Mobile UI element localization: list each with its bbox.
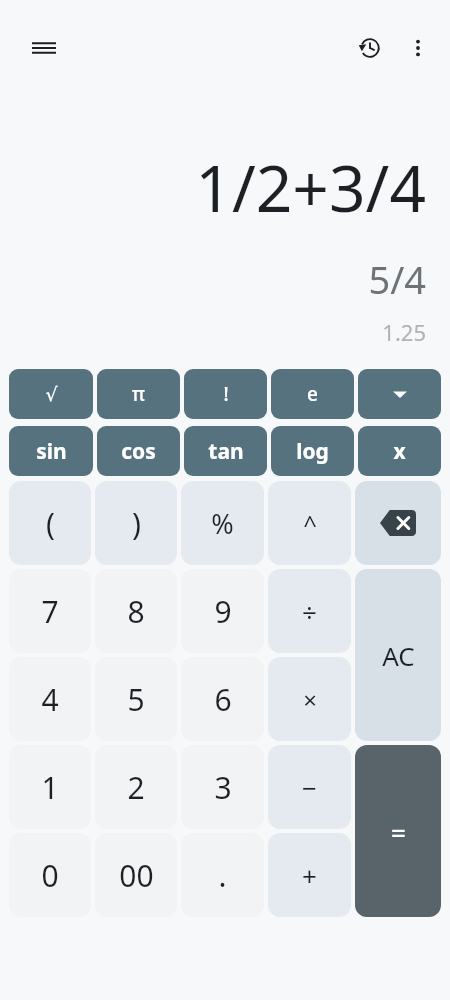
- button[interactable]: −: [268, 745, 351, 829]
- button[interactable]: ×: [268, 657, 351, 741]
- staticText: .: [218, 855, 227, 896]
- staticText: ×: [303, 683, 317, 716]
- button[interactable]: History: [346, 24, 394, 72]
- staticText: AC: [382, 638, 415, 673]
- button[interactable]: Menu: [20, 24, 68, 72]
- button[interactable]: More functions: [358, 369, 441, 419]
- staticText: log: [296, 437, 329, 466]
- button[interactable]: !: [184, 369, 267, 419]
- staticText: 3: [214, 767, 232, 808]
- button[interactable]: e: [271, 369, 354, 419]
- staticText: sin: [36, 437, 67, 466]
- button[interactable]: 4: [9, 657, 91, 741]
- button[interactable]: π: [97, 369, 180, 419]
- button[interactable]: x: [358, 426, 441, 476]
- staticText: x: [393, 437, 406, 466]
- button[interactable]: +: [268, 833, 351, 917]
- staticText: =: [391, 814, 406, 849]
- staticText: e: [307, 381, 318, 407]
- button[interactable]: ÷: [268, 569, 351, 653]
- staticText: 0: [41, 855, 59, 896]
- staticText: !: [223, 381, 229, 407]
- button[interactable]: Backspace: [355, 481, 441, 565]
- staticText: tan: [208, 437, 244, 466]
- button[interactable]: 2: [95, 745, 177, 829]
- button[interactable]: 0: [9, 833, 91, 917]
- staticText: 7: [41, 591, 59, 632]
- staticText: 9: [214, 591, 232, 632]
- staticText: %: [211, 505, 234, 542]
- button[interactable]: ^: [268, 481, 351, 565]
- button[interactable]: log: [271, 426, 354, 476]
- button[interactable]: 8: [95, 569, 177, 653]
- button[interactable]: 9: [181, 569, 264, 653]
- staticText: 00: [119, 855, 154, 896]
- staticText: −: [302, 770, 317, 805]
- button[interactable]: 00: [95, 833, 177, 917]
- staticText: 6: [214, 679, 232, 720]
- button[interactable]: %: [181, 481, 264, 565]
- button[interactable]: tan: [184, 426, 267, 476]
- staticText: 8: [127, 591, 145, 632]
- staticText: ): [132, 503, 141, 544]
- button[interactable]: cos: [97, 426, 180, 476]
- staticText: 2: [127, 767, 145, 808]
- staticText: 1.25: [382, 317, 426, 347]
- staticText: 4: [41, 679, 59, 720]
- staticText: π: [132, 381, 145, 407]
- staticText: √: [45, 383, 58, 405]
- button[interactable]: 3: [181, 745, 264, 829]
- staticText: 1/2+3/4: [195, 144, 426, 231]
- staticText: ^: [303, 507, 317, 540]
- button[interactable]: AC: [355, 569, 441, 741]
- button[interactable]: sin: [9, 426, 93, 476]
- button[interactable]: .: [181, 833, 264, 917]
- staticText: 5/4: [368, 253, 426, 305]
- staticText: 1: [41, 767, 59, 808]
- button[interactable]: 7: [9, 569, 91, 653]
- button[interactable]: 5: [95, 657, 177, 741]
- button[interactable]: ): [95, 481, 177, 565]
- button[interactable]: 1: [9, 745, 91, 829]
- staticText: ÷: [302, 594, 317, 629]
- staticText: cos: [121, 437, 156, 466]
- button[interactable]: =: [355, 745, 441, 917]
- staticText: (: [46, 503, 55, 544]
- staticText: 5: [127, 679, 145, 720]
- button[interactable]: More options: [394, 24, 442, 72]
- staticText: +: [302, 858, 317, 893]
- button[interactable]: 6: [181, 657, 264, 741]
- button[interactable]: (: [9, 481, 91, 565]
- button[interactable]: √: [9, 369, 93, 419]
